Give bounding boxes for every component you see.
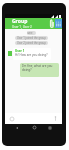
button[interactable]: Attach xyxy=(49,18,55,29)
other: Emoji xyxy=(9,116,14,121)
other: Voice message xyxy=(53,116,58,121)
button[interactable]: Group members xyxy=(55,19,62,28)
staticText: User 2 joined the group xyxy=(17,41,46,45)
staticText: User 1 xyxy=(15,49,25,53)
staticText: Hi! How are you doing? xyxy=(15,53,48,57)
staticText: doing? xyxy=(22,68,32,72)
button[interactable]: Recent apps xyxy=(46,124,54,131)
staticText: June 17 xyxy=(27,31,36,35)
staticText: User 1 joined the group xyxy=(17,36,46,40)
button[interactable]: Emoji xyxy=(5,113,62,124)
staticText: I'm fine, what are you xyxy=(22,64,53,68)
button[interactable]: Back xyxy=(13,124,21,131)
staticText: User 1, User 2 xyxy=(12,25,32,29)
button[interactable]: Home xyxy=(30,124,38,131)
button[interactable]: Group xyxy=(5,18,62,29)
staticText: Group xyxy=(12,18,28,25)
